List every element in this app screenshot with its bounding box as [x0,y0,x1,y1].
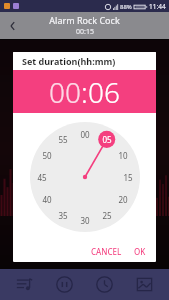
button[interactable]: Timer [89,269,120,300]
button[interactable]: Image [129,269,160,300]
staticText: Alarm Rock Cock [49,14,120,26]
button[interactable]: Playlist [9,269,40,300]
button[interactable]: 35 [55,207,71,223]
staticText: 88% [120,3,132,11]
button[interactable]: 50 [39,147,55,163]
button[interactable]: Back [0,13,26,39]
staticText: 45 [37,172,47,183]
button[interactable]: 15 [120,169,136,185]
button[interactable]: 55 [55,131,71,147]
staticText: 35 [58,210,68,221]
button[interactable]: 25 [99,207,115,223]
staticText: 40 [42,194,52,205]
staticText: 00 [80,129,90,140]
button[interactable]: OK [128,243,156,260]
staticText: 20 [118,194,128,205]
staticText: 00:15 [76,27,94,37]
staticText: : [81,73,88,111]
staticText: 11:44 [149,2,166,11]
button[interactable]: 00 [77,126,93,142]
button[interactable]: 40 [39,191,55,207]
button[interactable]: 06 [88,73,120,111]
staticText: 50 [42,150,52,161]
staticText: CANCEL [91,246,122,257]
staticText: 30 [80,215,90,226]
staticText: Set duration(hh:mm) [22,55,116,67]
staticText: 25 [102,210,112,221]
staticText: OK [134,246,146,257]
staticText: 05 [102,134,112,145]
staticText: 15 [123,172,133,183]
button[interactable]: Pause [49,269,80,300]
button[interactable]: 00 [49,73,81,111]
staticText: 55 [58,134,68,145]
button[interactable]: 10 [115,147,131,163]
button[interactable]: 20 [115,191,131,207]
button[interactable]: 05 [99,131,115,147]
button[interactable]: 30 [77,212,93,228]
button[interactable]: 45 [34,169,50,185]
staticText: 10 [118,150,128,161]
button[interactable]: CANCEL [85,243,128,260]
